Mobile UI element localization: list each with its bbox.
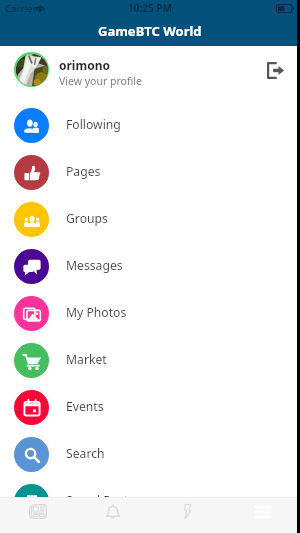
staticText: Following [66, 116, 121, 133]
staticText: GameBTC World [98, 22, 202, 40]
button[interactable]: Messages [0, 243, 300, 290]
staticText: Search [66, 445, 105, 462]
button[interactable]: Groups [0, 196, 300, 243]
button[interactable]: orimono [0, 46, 300, 93]
button[interactable]: Activity [150, 497, 225, 533]
staticText: My Photos [66, 304, 127, 321]
staticText: Market [66, 351, 107, 368]
button[interactable]: Notifications [75, 497, 150, 533]
button[interactable]: Search [0, 431, 300, 478]
button[interactable]: Events [0, 384, 300, 431]
staticText: Groups [66, 210, 108, 227]
button[interactable]: Saved Posts [0, 478, 300, 497]
button[interactable]: My Photos [0, 290, 300, 337]
staticText: orimono [59, 57, 110, 73]
staticText: Messages [66, 257, 123, 274]
button[interactable]: Pages [0, 149, 300, 196]
staticText: View your profile [59, 74, 142, 88]
staticText: 10:25 PM [128, 1, 172, 15]
staticText: Events [66, 398, 104, 415]
button[interactable]: Market [0, 337, 300, 384]
button[interactable]: Menu [225, 497, 300, 533]
button[interactable]: News Feed [0, 497, 75, 533]
button[interactable]: Following [0, 102, 300, 149]
staticText: Pages [66, 163, 101, 180]
button[interactable]: Log out [257, 52, 293, 88]
staticText: Saved Posts [66, 492, 135, 497]
staticText: Carrier [5, 2, 37, 15]
